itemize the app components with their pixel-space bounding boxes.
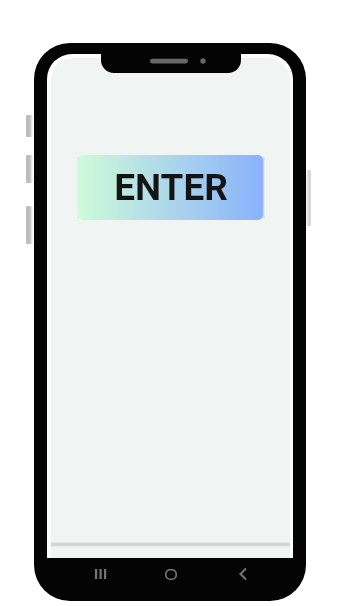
- button[interactable]: ENTER: [78, 155, 263, 220]
- staticText: ENTER: [114, 166, 228, 209]
- button[interactable]: Recent apps: [87, 561, 113, 587]
- button[interactable]: Home: [158, 561, 184, 587]
- button[interactable]: Back: [230, 561, 256, 587]
